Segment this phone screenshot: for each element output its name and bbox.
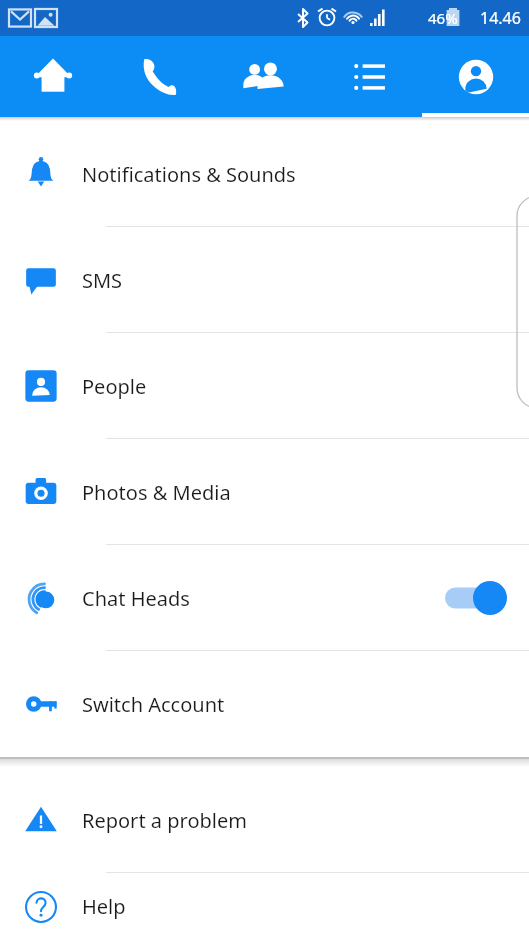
button[interactable]: Account	[423, 36, 529, 117]
button[interactable]: Home	[0, 36, 105, 117]
button[interactable]: Photos & Media	[0, 439, 529, 545]
staticText: 14.46	[480, 7, 521, 29]
staticText: Photos & Media	[82, 479, 529, 506]
staticText: People	[82, 373, 529, 400]
button[interactable]: Notifications & Sounds	[0, 121, 529, 227]
staticText: Report a problem	[82, 807, 529, 834]
button[interactable]: SMS	[0, 227, 529, 333]
staticText: SMS	[82, 267, 529, 294]
staticText: Switch Account	[82, 691, 529, 718]
button[interactable]: Report a problem	[0, 767, 529, 873]
button[interactable]: Chat Heads toggle	[445, 581, 507, 615]
button[interactable]: People	[0, 333, 529, 439]
button[interactable]: Feed	[317, 36, 423, 117]
button[interactable]: Help	[0, 873, 529, 940]
button[interactable]: Chat Heads	[0, 545, 529, 651]
button[interactable]: People	[211, 36, 317, 117]
button[interactable]: Calls	[105, 36, 211, 117]
button[interactable]: Switch Account	[0, 651, 529, 757]
staticText: Notifications & Sounds	[82, 161, 529, 188]
staticText: 46%	[428, 8, 458, 28]
staticText: Chat Heads	[82, 585, 445, 612]
staticText: Help	[82, 893, 529, 920]
